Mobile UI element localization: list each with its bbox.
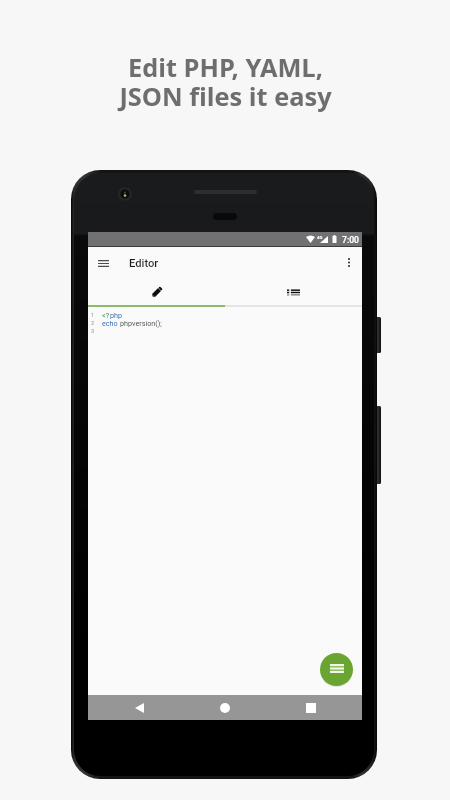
staticText: 7:00 [342,235,359,245]
staticText: Editor [129,257,159,270]
button[interactable]: Editor tab [88,279,225,305]
button[interactable]: More options [337,250,361,274]
button[interactable]: Recent apps [300,697,322,719]
staticText: 2 [91,320,95,327]
staticText: php [110,311,123,319]
staticText: Edit PHP, YAML, JSON files it easy [119,50,332,113]
staticText: <? [102,311,110,319]
button[interactable]: Files tab [225,279,362,305]
button[interactable]: Open menu [320,653,353,686]
button[interactable]: Home [214,697,236,719]
staticText: 4G [317,235,323,240]
staticText: 3 [91,328,95,335]
staticText: 1 [91,312,95,319]
button[interactable]: Open navigation menu [91,251,115,275]
staticText: echo [102,319,120,327]
button[interactable]: Back [128,697,150,719]
staticText: phpversion(); [120,319,162,327]
